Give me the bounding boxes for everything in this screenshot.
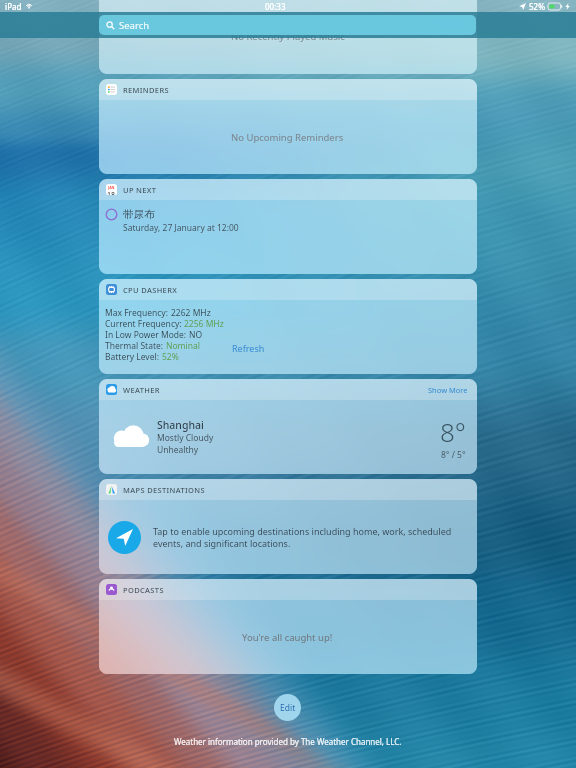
staticText: 8° / 5°	[441, 449, 466, 461]
button[interactable]: Edit	[274, 694, 301, 721]
staticText: Saturday, 27 January at 12:00	[123, 222, 239, 234]
staticText: WEATHER	[123, 385, 160, 395]
button[interactable]: REMINDERS	[99, 79, 476, 100]
button[interactable]: PODCASTS	[99, 579, 476, 600]
staticText: 2256 MHz	[184, 318, 224, 329]
staticText: Weather information provided by The Weat…	[174, 736, 402, 747]
staticText: JAN	[108, 185, 115, 190]
button[interactable]: CPU DASHERX	[99, 279, 476, 300]
staticText: Tap to enable upcoming destinations incl…	[153, 525, 464, 550]
staticText: Edit	[280, 702, 296, 714]
staticText: CPU DASHERX	[123, 285, 178, 295]
staticText: Thermal State:	[105, 340, 166, 351]
staticText: No Recently Played Music	[231, 30, 345, 43]
staticText: iPad	[5, 1, 22, 12]
button[interactable]: WEATHER	[99, 379, 476, 400]
staticText: Unhealthy	[157, 444, 199, 456]
staticText: Battery Level:	[105, 351, 162, 362]
staticText: 00:33	[265, 1, 286, 12]
button[interactable]: JAN	[99, 179, 476, 200]
button[interactable]: Show More	[428, 385, 468, 395]
staticText: Search	[119, 19, 150, 32]
staticText: Mostly Cloudy	[157, 432, 214, 444]
staticText: UP NEXT	[123, 185, 157, 195]
button[interactable]: No Recently Played Music	[99, 0, 476, 74]
staticText: Max Frequency:	[105, 307, 171, 318]
staticText: In Low Power Mode:	[105, 329, 189, 340]
staticText: No Upcoming Reminders	[231, 131, 344, 144]
staticText: NO	[189, 329, 203, 340]
staticText: REMINDERS	[123, 85, 169, 95]
staticText: 18	[107, 190, 116, 195]
staticText: Shanghai	[157, 418, 204, 432]
staticText: Nominal	[166, 340, 200, 351]
staticText: You're all caught up!	[242, 631, 333, 644]
staticText: 8°	[440, 414, 466, 449]
button[interactable]: Search	[99, 15, 476, 35]
staticText: PODCASTS	[123, 585, 164, 595]
button[interactable]: MAPS DESTINATIONS	[99, 479, 476, 500]
staticText: 52%	[162, 351, 179, 362]
staticText: 2262 MHz	[171, 307, 211, 318]
staticText: 52%	[529, 1, 545, 12]
staticText: 带尿布	[123, 208, 155, 221]
staticText: MAPS DESTINATIONS	[123, 485, 205, 495]
button[interactable]: Refresh	[232, 342, 265, 354]
staticText: Current Frequency:	[105, 318, 184, 329]
